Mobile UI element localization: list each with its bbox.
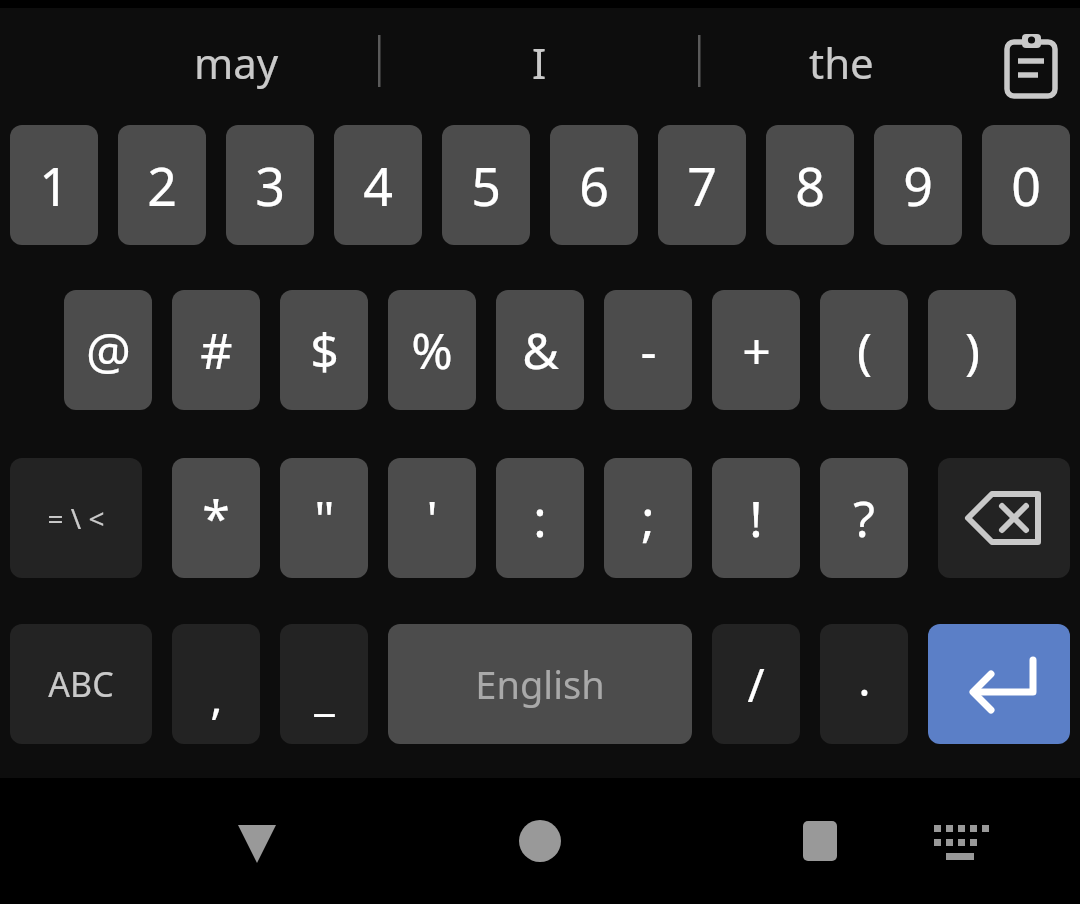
staticText: " <box>314 484 335 552</box>
staticText: # <box>200 316 233 384</box>
staticText: @ <box>86 316 131 384</box>
button[interactable]: Back <box>197 781 317 901</box>
staticText: $ <box>310 316 339 384</box>
button[interactable]: I <box>389 8 689 116</box>
staticText: ) <box>965 316 980 384</box>
button[interactable]: $ <box>280 290 368 410</box>
button[interactable]: Home <box>480 781 600 901</box>
staticText: 6 <box>579 150 609 221</box>
button[interactable]: 6 <box>550 125 638 245</box>
staticText: : <box>533 484 547 552</box>
staticText: & <box>522 316 559 384</box>
button[interactable]: 7 <box>658 125 746 245</box>
staticText: ABC <box>48 661 114 707</box>
staticText: 2 <box>147 150 177 221</box>
button[interactable]: Switch keyboard <box>905 781 1015 901</box>
button[interactable]: may <box>86 8 386 116</box>
staticText: 9 <box>903 150 933 221</box>
staticText: English <box>475 658 605 710</box>
staticText: % <box>411 316 453 384</box>
staticText: 3 <box>255 150 285 221</box>
button[interactable]: Enter <box>928 624 1070 744</box>
staticText: ! <box>749 484 763 552</box>
button[interactable]: 3 <box>226 125 314 245</box>
button[interactable]: @ <box>64 290 152 410</box>
staticText: ; <box>641 484 655 552</box>
staticText: 4 <box>363 150 393 221</box>
button[interactable]: # <box>172 290 260 410</box>
button[interactable]: Backspace <box>938 458 1070 578</box>
button[interactable]: ) <box>928 290 1016 410</box>
button[interactable]: = \ < <box>10 458 142 578</box>
staticText: ? <box>853 484 875 552</box>
button[interactable]: , <box>172 624 260 744</box>
button[interactable]: 5 <box>442 125 530 245</box>
staticText: 8 <box>795 150 825 221</box>
staticText: 7 <box>687 150 717 221</box>
staticText: * <box>202 484 230 552</box>
button[interactable]: Clipboard <box>985 29 1079 97</box>
staticText: 5 <box>471 150 501 221</box>
staticText: may <box>194 34 279 91</box>
staticText: = \ < <box>47 499 105 537</box>
staticText: ( <box>857 316 872 384</box>
button[interactable]: / <box>712 624 800 744</box>
staticText: / <box>747 653 765 716</box>
staticText: 0 <box>1011 150 1041 221</box>
staticText: ' <box>426 484 438 552</box>
button[interactable]: 0 <box>982 125 1070 245</box>
button[interactable]: . <box>820 624 908 744</box>
button[interactable]: 8 <box>766 125 854 245</box>
button[interactable]: 1 <box>10 125 98 245</box>
button[interactable]: 9 <box>874 125 962 245</box>
staticText: , <box>210 665 223 728</box>
button[interactable]: English <box>388 624 692 744</box>
button[interactable]: * <box>172 458 260 578</box>
staticText: 1 <box>39 150 69 221</box>
button[interactable]: ! <box>712 458 800 578</box>
button[interactable]: ABC <box>10 624 152 744</box>
button[interactable]: ( <box>820 290 908 410</box>
button[interactable]: : <box>496 458 584 578</box>
button[interactable]: ; <box>604 458 692 578</box>
button[interactable]: 2 <box>118 125 206 245</box>
button[interactable]: Recent apps <box>760 781 880 901</box>
staticText: + <box>742 316 771 384</box>
button[interactable]: _ <box>280 624 368 744</box>
staticText: the <box>809 34 874 91</box>
button[interactable]: % <box>388 290 476 410</box>
button[interactable]: + <box>712 290 800 410</box>
button[interactable]: - <box>604 290 692 410</box>
staticText: - <box>640 316 657 384</box>
button[interactable]: ' <box>388 458 476 578</box>
button[interactable]: & <box>496 290 584 410</box>
button[interactable]: " <box>280 458 368 578</box>
staticText: . <box>858 647 871 710</box>
staticText: _ <box>314 661 335 724</box>
staticText: I <box>532 34 547 91</box>
button[interactable]: the <box>691 8 991 116</box>
button[interactable]: ? <box>820 458 908 578</box>
button[interactable]: 4 <box>334 125 422 245</box>
